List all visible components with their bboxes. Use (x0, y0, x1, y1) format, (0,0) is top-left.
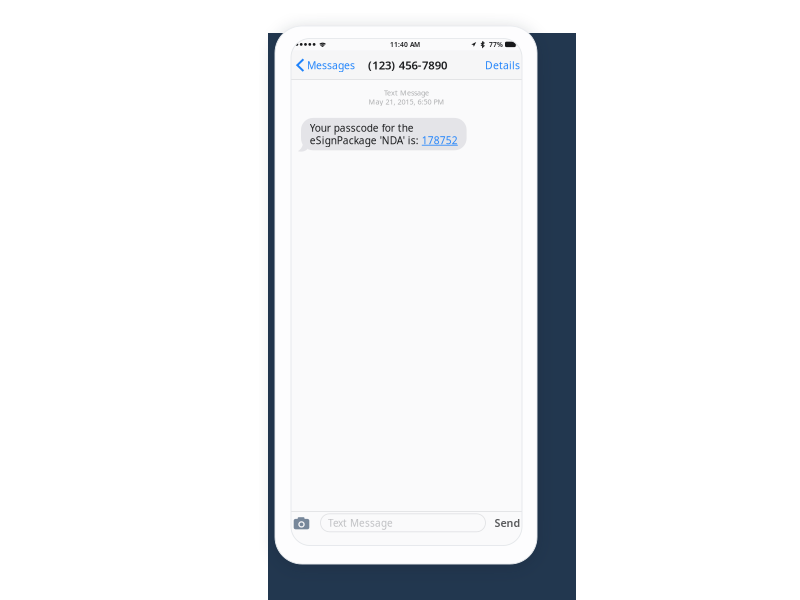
staticText: May 21, 2015, 6:50 PM (368, 97, 444, 106)
staticText: Messages (307, 58, 355, 72)
button[interactable]: Take photo (291, 513, 311, 533)
staticText: Text Message (328, 516, 393, 530)
staticText: Your passcode for the (310, 121, 414, 135)
staticText: Details (485, 58, 520, 72)
staticText: 77% (489, 40, 503, 49)
staticText: Send (494, 515, 520, 530)
button[interactable]: Details (483, 50, 522, 80)
staticText: (123) 456-7890 (368, 57, 447, 73)
staticText: Text Message (384, 88, 429, 98)
button[interactable]: Send (493, 515, 521, 530)
staticText: eSignPackage 'NDA' is: (310, 133, 422, 147)
button[interactable]: Messages (291, 50, 360, 80)
staticText: 178752 (422, 133, 458, 147)
staticText: 11:40 AM (390, 40, 420, 49)
